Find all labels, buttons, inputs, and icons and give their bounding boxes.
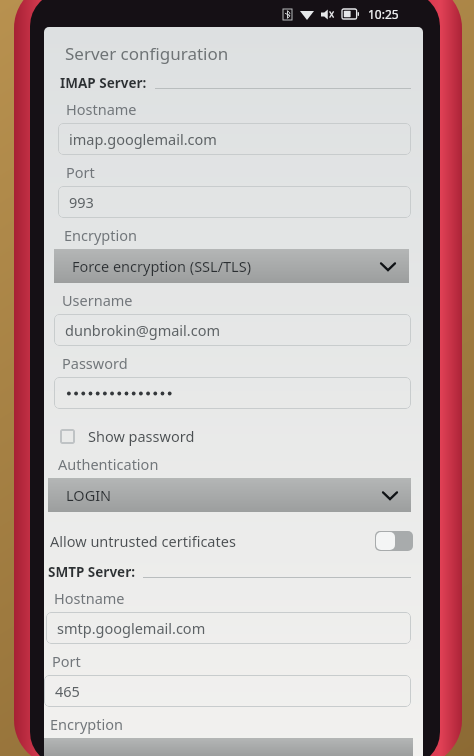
button[interactable]: 465 [44, 675, 411, 707]
staticText: Port [66, 162, 95, 182]
button[interactable]: Server configuration [44, 36, 423, 71]
staticText: 465 [55, 681, 80, 701]
staticText: 993 [69, 192, 94, 212]
button[interactable]: imap.googlemail.com [58, 123, 411, 155]
staticText: smtp.googlemail.com [57, 618, 206, 638]
other: Allow untrusted certificates toggle [375, 531, 413, 551]
staticText: IMAP Server: [60, 74, 147, 92]
staticText: SMTP Server: [48, 563, 135, 581]
staticText: Allow untrusted certificates [50, 531, 236, 551]
staticText: Hostname [54, 588, 125, 608]
button[interactable]: 993 [58, 186, 411, 218]
staticText: Server configuration [65, 42, 229, 65]
staticText: Hostname [66, 99, 137, 119]
staticText: LOGIN [66, 485, 112, 505]
staticText: Username [62, 290, 133, 310]
staticText: Show password [88, 426, 195, 446]
button[interactable] [54, 377, 411, 409]
button[interactable]: Allow untrusted certificates [50, 525, 413, 557]
staticText: 10:25 [368, 6, 399, 22]
staticText: Encryption [64, 225, 137, 245]
staticText: dunbrokin@gmail.com [65, 320, 220, 340]
button[interactable] [44, 738, 413, 756]
button[interactable]: Force encryption (SSL/TLS) [54, 249, 409, 283]
staticText: Encryption [50, 714, 123, 734]
button[interactable]: smtp.googlemail.com [46, 612, 411, 644]
button[interactable]: Show password [56, 423, 411, 449]
button[interactable]: LOGIN [48, 478, 411, 512]
staticText: Authentication [58, 454, 159, 474]
staticText: Port [52, 651, 81, 671]
staticText: imap.googlemail.com [69, 129, 217, 149]
staticText: Password [62, 353, 128, 373]
button[interactable]: dunbrokin@gmail.com [54, 314, 411, 346]
staticText: Force encryption (SSL/TLS) [72, 256, 252, 276]
